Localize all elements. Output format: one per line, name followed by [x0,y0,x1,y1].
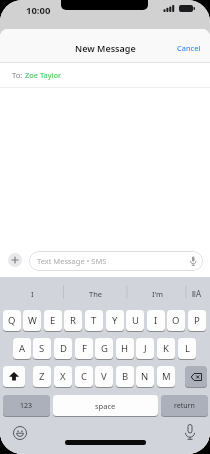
button[interactable]: Z [33,366,51,387]
staticText: D [60,342,67,355]
button[interactable]: M [157,366,175,387]
button[interactable]: O [167,310,185,331]
staticText: W [28,314,37,327]
staticText: V [101,370,107,383]
staticText: I'm [152,289,164,299]
button[interactable]: J [136,338,154,359]
button[interactable]: space [53,395,158,416]
button[interactable]: Text Message • SMS [29,251,203,271]
button[interactable]: C [75,366,93,387]
staticText: The [89,289,103,299]
staticText: space [95,401,116,411]
button[interactable]: L [178,338,196,359]
button[interactable]: Cancel [177,43,201,53]
staticText: 123 [20,401,33,411]
staticText: R [70,314,76,327]
button[interactable]: X [54,366,72,387]
staticText: C [81,370,88,383]
staticText: Y [112,314,118,327]
button[interactable]: R [64,310,82,331]
button[interactable]: S [33,338,51,359]
button[interactable]: T [85,310,103,331]
button[interactable]: N [136,366,154,387]
staticText: F [82,342,87,355]
staticText: K [163,342,169,355]
button[interactable]: A [13,338,31,359]
staticText: Text Message • SMS [37,256,107,266]
staticText: return [174,401,195,411]
button[interactable]: Y [106,310,124,331]
button[interactable]: G [95,338,113,359]
staticText: P [194,314,200,327]
staticText: Cancel [177,43,201,53]
staticText: T [91,314,97,327]
staticText: I [31,289,34,299]
button[interactable]: B [116,366,134,387]
button[interactable]: D [54,338,72,359]
staticText: G [101,342,108,355]
staticText: L [185,342,190,355]
button[interactable] [185,366,207,387]
staticText: M [162,370,171,383]
staticText: To: [12,70,25,80]
staticText: A [19,342,26,355]
staticText: I [154,314,158,327]
button[interactable]: P [188,310,206,331]
staticText: Z [39,370,45,383]
staticText: J [144,342,147,355]
button[interactable]: H [116,338,134,359]
staticText: 10:00 [26,4,51,17]
button[interactable]: 123 [3,395,50,416]
staticText: A [196,288,202,299]
button[interactable]: E [44,310,62,331]
button[interactable]: To: [12,63,210,87]
button[interactable]: K [157,338,175,359]
staticText: H [121,342,129,355]
button[interactable]: I [147,310,165,331]
staticText: O [172,314,180,327]
button[interactable]: return [161,395,208,416]
staticText: Q [8,314,16,327]
staticText: E [50,314,56,327]
button[interactable]: U [126,310,144,331]
button[interactable]: V [95,366,113,387]
button[interactable] [13,426,27,440]
staticText: N [141,370,149,383]
staticText: U [132,314,139,327]
button[interactable] [8,253,22,267]
staticText: B [122,370,129,383]
staticText: New Message [75,42,136,54]
button[interactable] [184,424,196,441]
button[interactable]: F [75,338,93,359]
staticText: X [60,370,66,383]
staticText: S [39,342,45,355]
staticText: Zoe Taylor [25,70,62,80]
button[interactable] [3,366,25,387]
button[interactable]: W [23,310,41,331]
button[interactable]: Q [3,310,21,331]
